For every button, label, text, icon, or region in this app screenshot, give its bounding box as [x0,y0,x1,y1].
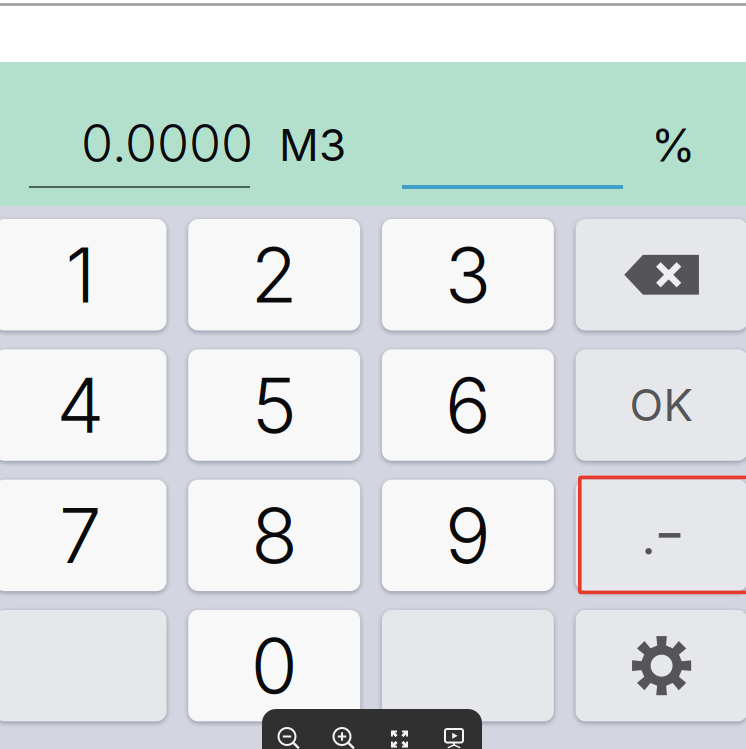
staticText: 8 [251,489,297,581]
button[interactable]: Settings [576,610,746,721]
button[interactable]: 2 [188,219,360,330]
button[interactable]: 5 [188,349,360,461]
staticText: 2 [251,229,298,321]
button[interactable]: 6 [382,349,554,461]
staticText: % [651,118,696,172]
button[interactable]: Zoom in [317,717,372,749]
button[interactable]: 1 [0,219,166,330]
staticText: 1 [65,229,95,321]
staticText: 7 [59,489,102,581]
staticText: OK [630,378,694,432]
button[interactable]: Present [427,717,482,749]
button[interactable]: OK [576,349,746,461]
staticText: 5 [252,359,297,451]
staticText: 4 [56,359,104,451]
staticText: 3 [445,229,491,321]
button[interactable]: Delete [576,219,746,330]
button[interactable]: Decimal point and minus [576,480,746,591]
button[interactable]: Volume value 0.0000 [29,112,260,196]
staticText: М3 [279,118,346,172]
button[interactable]: 0 [188,610,360,721]
staticText: 9 [445,489,491,581]
button[interactable]: Zoom out [262,717,317,749]
staticText: 6 [445,359,491,451]
button[interactable]: 9 [382,480,554,591]
button[interactable]: 8 [188,480,360,591]
button[interactable] [382,610,554,721]
button[interactable]: 7 [0,480,166,591]
button[interactable]: 3 [382,219,554,330]
staticText: 0.0000 [81,111,253,174]
staticText: 0 [251,620,298,712]
button[interactable]: 4 [0,349,166,461]
button[interactable]: Percentage value [402,112,623,194]
button[interactable]: Fit to screen [372,717,427,749]
